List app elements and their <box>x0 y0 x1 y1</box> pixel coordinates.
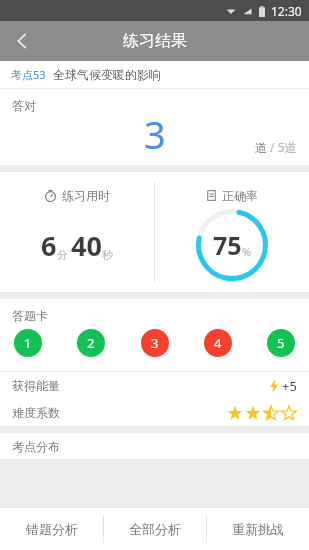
staticText: 全球气候变暖的影响 <box>53 67 161 82</box>
staticText: 答对 <box>12 98 36 113</box>
staticText: 1 <box>24 334 32 352</box>
button[interactable]: 2 <box>77 329 105 357</box>
staticText: 正确率 <box>222 188 258 203</box>
staticText: 考点53 <box>11 67 46 82</box>
button[interactable]: 3 <box>141 329 169 357</box>
staticText: 40 <box>71 227 102 264</box>
staticText: 道 <box>255 140 267 155</box>
staticText: 秒 <box>102 248 113 262</box>
staticText: +5 <box>282 377 297 395</box>
staticText: 考点分布 <box>12 439 60 454</box>
button[interactable]: 5 <box>267 329 295 357</box>
staticText: 3 <box>151 334 159 352</box>
button[interactable]: 全部分析 <box>104 508 206 550</box>
staticText: 4 <box>214 334 222 352</box>
button[interactable]: Back <box>0 21 44 61</box>
button[interactable]: 4 <box>204 329 232 357</box>
staticText: 练习结果 <box>123 31 187 51</box>
staticText: 答题卡 <box>12 308 48 323</box>
staticText: 全部分析 <box>129 521 181 537</box>
button[interactable]: 1 <box>14 329 42 357</box>
staticText: 分 <box>57 248 68 262</box>
staticText: 2 <box>87 334 95 352</box>
staticText: 难度系数 <box>12 405 60 420</box>
staticText: 错题分析 <box>26 521 78 537</box>
staticText: 获得能量 <box>12 378 60 393</box>
staticText: 重新挑战 <box>232 521 284 537</box>
staticText: 6 <box>41 227 57 264</box>
staticText: 3 <box>144 108 166 160</box>
staticText: 12:30 <box>271 3 302 19</box>
staticText: 练习用时 <box>62 188 110 203</box>
staticText: 75 <box>213 228 242 262</box>
staticText: / 5道 <box>267 139 297 155</box>
button[interactable]: 错题分析 <box>0 508 103 550</box>
staticText: 5 <box>277 334 285 352</box>
staticText: % <box>242 244 252 259</box>
button[interactable]: 重新挑战 <box>207 508 309 550</box>
